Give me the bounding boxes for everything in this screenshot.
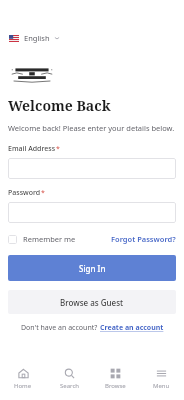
staticText: Menu bbox=[153, 382, 170, 390]
staticText: Welcome back! Please enter your details … bbox=[8, 123, 175, 133]
other: Search bbox=[64, 368, 75, 379]
button[interactable]: Search bbox=[46, 365, 92, 393]
button[interactable]: English bbox=[7, 30, 62, 46]
button[interactable]: Sign In bbox=[8, 255, 176, 281]
staticText: Create an account bbox=[100, 323, 164, 333]
button[interactable]: Create an account bbox=[100, 323, 164, 333]
staticText: Sign In bbox=[79, 263, 106, 274]
other: Browse bbox=[110, 368, 121, 379]
staticText: Home bbox=[14, 382, 32, 390]
staticText: Remember me bbox=[23, 234, 76, 244]
button[interactable]: Browse bbox=[92, 365, 138, 393]
button[interactable]: Forgot Password? bbox=[111, 232, 176, 246]
staticText: * bbox=[56, 144, 60, 154]
button[interactable]: Remember me bbox=[8, 232, 76, 246]
staticText: English bbox=[24, 33, 50, 43]
other: Menu bbox=[156, 368, 167, 379]
other: Home bbox=[18, 368, 29, 379]
staticText: Don't have an account? bbox=[21, 323, 100, 333]
button[interactable]: Home bbox=[0, 365, 46, 393]
staticText: Browse as Guest bbox=[60, 297, 124, 308]
button[interactable] bbox=[8, 158, 176, 179]
staticText: Forgot Password? bbox=[111, 234, 176, 244]
button[interactable]: Menu bbox=[138, 365, 184, 393]
button[interactable]: Browse as Guest bbox=[8, 290, 176, 314]
staticText: Password bbox=[8, 188, 41, 198]
staticText: Browse bbox=[105, 382, 126, 390]
staticText: * bbox=[41, 188, 45, 198]
button[interactable] bbox=[8, 202, 176, 223]
staticText: Welcome Back bbox=[8, 96, 111, 115]
staticText: Search bbox=[60, 382, 79, 390]
staticText: Email Address bbox=[8, 144, 56, 154]
